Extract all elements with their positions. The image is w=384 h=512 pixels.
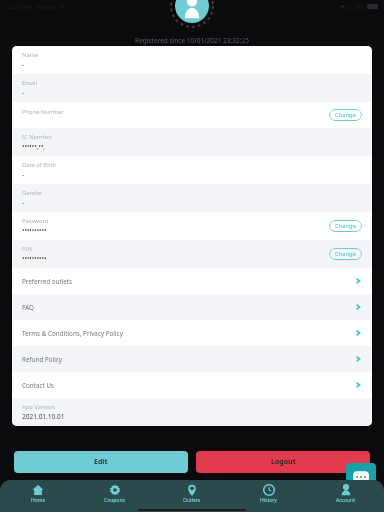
- button[interactable]: Change: [329, 220, 362, 232]
- button[interactable]: IC Number: [12, 128, 372, 156]
- staticText: Home: [31, 497, 46, 504]
- button[interactable]: Account: [307, 480, 384, 512]
- staticText: 12:26 PM Sat Jan 10: [6, 3, 65, 11]
- staticText: Preferred outlets: [22, 277, 354, 286]
- button[interactable]: App Version: [12, 398, 372, 426]
- button[interactable]: Change: [329, 248, 362, 260]
- staticText: Gender: [22, 189, 43, 197]
- button[interactable]: Terms & Conditions, Privacy Policy: [12, 320, 372, 346]
- staticText: ••••••,••,: [22, 142, 46, 151]
- staticText: PIN: [22, 245, 32, 253]
- staticText: -: [22, 170, 25, 179]
- button[interactable]: Home: [0, 480, 76, 512]
- staticText: -: [22, 198, 25, 207]
- staticText: Coupons: [104, 497, 125, 504]
- staticText: Date of Birth: [22, 161, 57, 169]
- button[interactable]: Date of Birth: [12, 156, 372, 184]
- button[interactable]: Outlets: [153, 480, 230, 512]
- staticText: IC Number: [22, 133, 52, 141]
- button[interactable]: Password: [12, 212, 372, 240]
- staticText: -: [22, 88, 25, 97]
- button[interactable]: FAQ: [12, 294, 372, 320]
- button[interactable]: PIN: [12, 240, 372, 268]
- button[interactable]: Phone Number: [12, 102, 372, 128]
- staticText: Account: [336, 497, 356, 504]
- button[interactable]: Contact Us: [12, 372, 372, 398]
- staticText: App Version: [22, 403, 55, 411]
- staticText: -: [22, 60, 25, 69]
- button[interactable]: Preferred outlets: [12, 268, 372, 294]
- staticText: Change: [335, 250, 356, 258]
- staticText: Email: [22, 79, 37, 87]
- staticText: Change: [335, 222, 356, 230]
- staticText: Change: [335, 111, 356, 119]
- staticText: Terms & Conditions, Privacy Policy: [22, 329, 354, 338]
- staticText: ▼ 12.3%: [340, 3, 364, 11]
- staticText: Name: [22, 51, 39, 59]
- staticText: Password: [22, 217, 49, 225]
- button[interactable]: Coupons: [76, 480, 153, 512]
- staticText: Contact Us: [22, 381, 354, 390]
- button[interactable]: Logout: [196, 451, 370, 473]
- staticText: Logout: [271, 457, 296, 467]
- staticText: Refund Policy: [22, 355, 354, 364]
- staticText: Phone Number: [22, 108, 64, 116]
- staticText: -: [191, 27, 193, 35]
- staticText: FAQ: [22, 303, 354, 312]
- staticText: ••••••••••: [22, 226, 47, 235]
- button[interactable]: Name: [12, 46, 372, 74]
- button[interactable]: Refund Policy: [12, 346, 372, 372]
- button[interactable]: Edit: [14, 451, 188, 473]
- staticText: Outlets: [183, 497, 201, 504]
- button[interactable]: Change: [329, 109, 362, 121]
- staticText: History: [260, 497, 277, 504]
- staticText: Edit: [94, 457, 108, 467]
- button[interactable]: History: [230, 480, 307, 512]
- button[interactable]: Chat support: [346, 463, 376, 493]
- staticText: ••••••••••: [22, 254, 47, 263]
- staticText: 2021.01.10.01: [22, 412, 65, 421]
- staticText: Registered since 10/01/2021 23:32:25: [135, 36, 249, 45]
